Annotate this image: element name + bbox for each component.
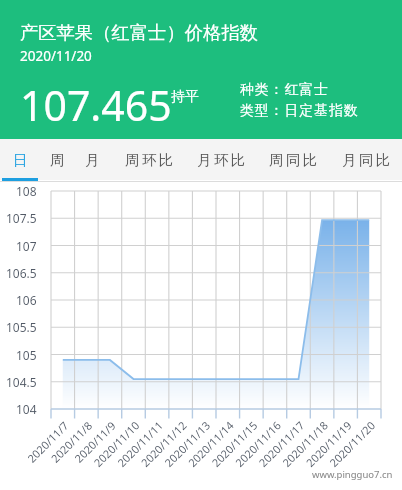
staticText: 持平 (171, 88, 199, 106)
button[interactable]: 周同比 (266, 139, 322, 180)
staticText: 周同比 (269, 151, 320, 169)
button[interactable]: 周环比 (122, 139, 178, 180)
button[interactable]: 月环比 (194, 139, 250, 180)
staticText: 月同比 (342, 151, 393, 169)
button[interactable]: 月 (78, 139, 108, 180)
staticText: 2020/11/20 (20, 47, 92, 65)
staticText: 月环比 (197, 151, 248, 169)
button[interactable]: 周 (43, 139, 73, 180)
staticText: 类型：日定基指数 (240, 102, 359, 120)
staticText: 月 (85, 151, 102, 169)
staticText: 种类：红富士 (240, 81, 329, 99)
staticText: 日 (13, 151, 30, 169)
button[interactable]: 月同比 (339, 139, 395, 180)
button[interactable]: 日 (6, 139, 36, 180)
staticText: 107.465 (20, 77, 172, 133)
staticText: 周环比 (125, 151, 176, 169)
staticText: 产区苹果（红富士）价格指数 (20, 21, 258, 44)
staticText: 周 (50, 151, 67, 169)
